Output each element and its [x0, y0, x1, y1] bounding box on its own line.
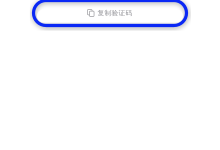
button[interactable]: 复制验证码 [10, 0, 210, 26]
staticText: 复制验证码 [97, 9, 132, 17]
